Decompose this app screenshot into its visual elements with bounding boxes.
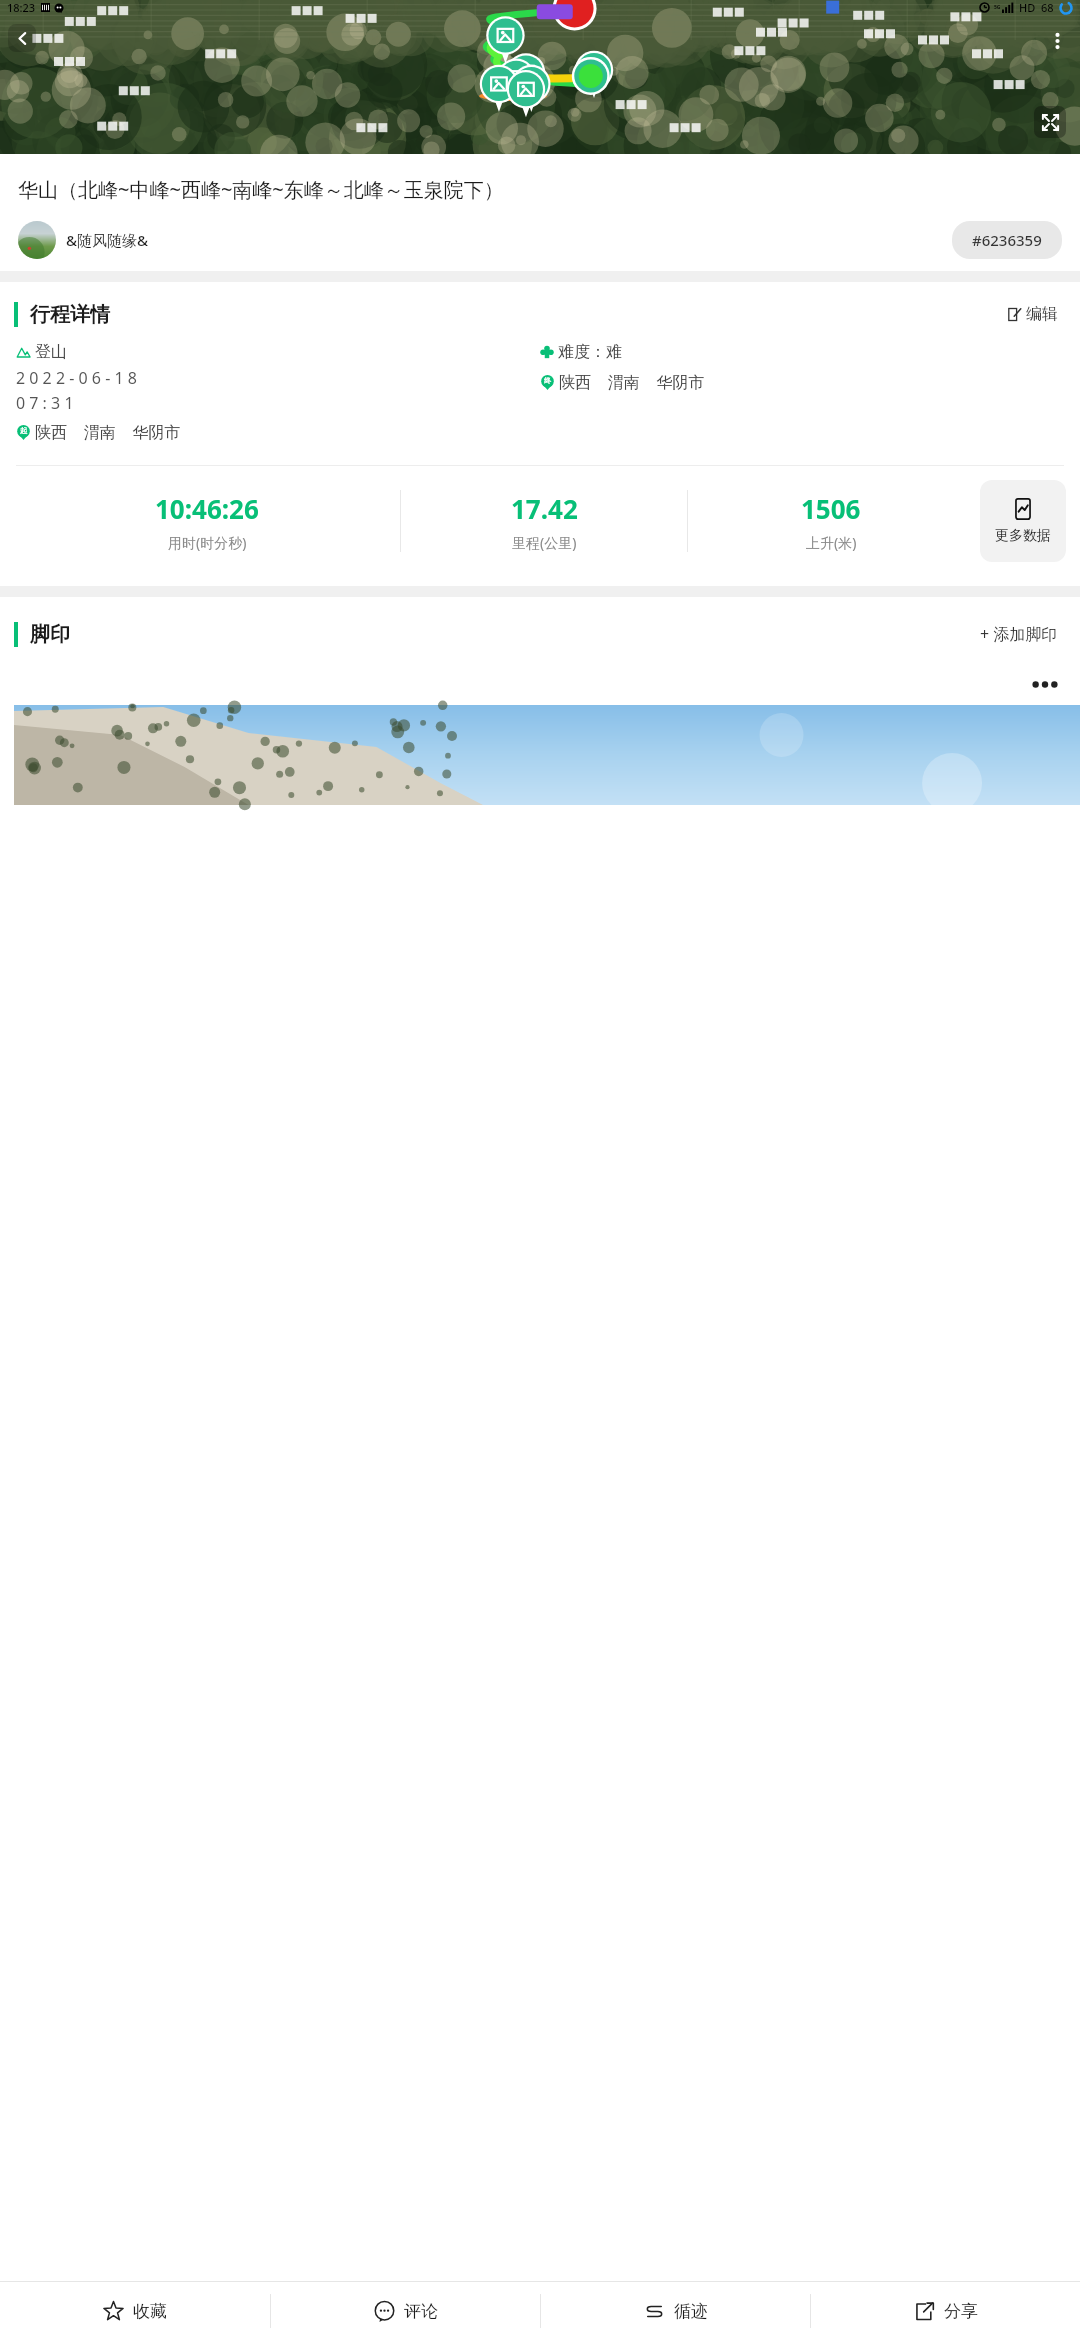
staticText: HD bbox=[1019, 0, 1036, 15]
staticText: 里程(公里) bbox=[512, 533, 577, 552]
staticText: 登山 bbox=[35, 342, 67, 362]
button[interactable]: 17.42 bbox=[401, 491, 687, 552]
staticText: 分享 bbox=[944, 2301, 978, 2322]
staticText: 5G bbox=[994, 4, 1001, 11]
staticText: 陕西 渭南 华阴市 bbox=[35, 421, 181, 443]
button[interactable]: 10:46:26 bbox=[14, 491, 400, 552]
staticText: 陕西 渭南 华阴市 bbox=[559, 371, 705, 393]
button[interactable] bbox=[18, 221, 56, 259]
staticText: 10:46:26 bbox=[155, 491, 259, 526]
staticText: &随风随缘& bbox=[66, 230, 149, 250]
button[interactable] bbox=[14, 705, 1080, 805]
button[interactable]: More bbox=[1030, 675, 1060, 693]
staticText: 0 7 : 3 1 bbox=[16, 392, 74, 414]
staticText: 行程详情 bbox=[30, 302, 110, 327]
staticText: 1506 bbox=[801, 491, 861, 526]
staticText: 编辑 bbox=[1026, 304, 1058, 324]
button[interactable]: 更多数据 bbox=[980, 480, 1066, 562]
button[interactable]: Back bbox=[8, 24, 36, 52]
staticText: 起 bbox=[20, 426, 27, 435]
staticText: 上升(米) bbox=[806, 533, 857, 552]
button[interactable]: + 添加脚印 bbox=[976, 619, 1062, 649]
staticText: 评论 bbox=[404, 2301, 438, 2322]
staticText: 华山（北峰~中峰~西峰~南峰~东峰～北峰～玉泉院下） bbox=[18, 176, 504, 203]
staticText: 18:23 bbox=[7, 0, 36, 15]
staticText: 68 bbox=[1041, 0, 1054, 15]
staticText: #6236359 bbox=[972, 230, 1042, 250]
staticText: 2 0 2 2 - 0 6 - 1 8 bbox=[16, 367, 137, 389]
staticText: 循迹 bbox=[674, 2301, 708, 2322]
button[interactable]: 分享 bbox=[811, 2282, 1080, 2340]
button[interactable]: More options bbox=[1044, 28, 1070, 54]
button[interactable]: 循迹 bbox=[541, 2282, 810, 2340]
staticText: + 添加脚印 bbox=[980, 623, 1058, 645]
button[interactable]: #6236359 bbox=[952, 221, 1062, 259]
staticText: 脚印 bbox=[30, 622, 70, 647]
button[interactable]: 评论 bbox=[271, 2282, 540, 2340]
staticText: 难度：难 bbox=[558, 342, 622, 362]
button[interactable]: Fullscreen bbox=[1034, 106, 1066, 138]
staticText: 17.42 bbox=[511, 491, 578, 526]
staticText: 更多数据 bbox=[995, 527, 1051, 545]
button[interactable]: 收藏 bbox=[0, 2282, 270, 2340]
button[interactable]: 编辑 bbox=[1003, 300, 1062, 328]
button[interactable]: 1506 bbox=[688, 491, 974, 552]
staticText: 收藏 bbox=[133, 2301, 167, 2322]
staticText: 终 bbox=[544, 376, 551, 385]
staticText: 用时(时分秒) bbox=[168, 533, 247, 552]
